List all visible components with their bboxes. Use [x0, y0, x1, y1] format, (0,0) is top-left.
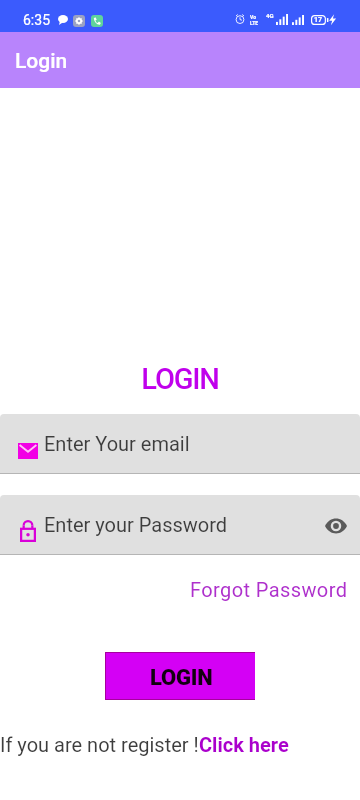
staticText: Enter Your email — [44, 432, 190, 455]
staticText: If you are not register ! — [0, 733, 199, 756]
staticText: Login — [15, 49, 68, 74]
button[interactable]: Enter your Password — [0, 495, 360, 555]
button[interactable]: LOGIN — [106, 653, 255, 699]
button[interactable]: Enter Your email — [0, 414, 360, 474]
staticText: 4G — [266, 12, 274, 19]
button[interactable]: Click here — [199, 733, 289, 756]
staticText: Enter your Password — [44, 513, 228, 536]
staticText: 17 — [314, 16, 323, 24]
button[interactable]: Forgot Password — [190, 578, 360, 601]
staticText: LOGIN — [150, 665, 213, 691]
button[interactable]: Show password — [318, 508, 354, 544]
staticText: Vo — [250, 14, 256, 20]
staticText: LTE — [250, 20, 259, 26]
staticText: 6:35 — [23, 12, 50, 28]
staticText: LOGIN — [141, 362, 219, 396]
